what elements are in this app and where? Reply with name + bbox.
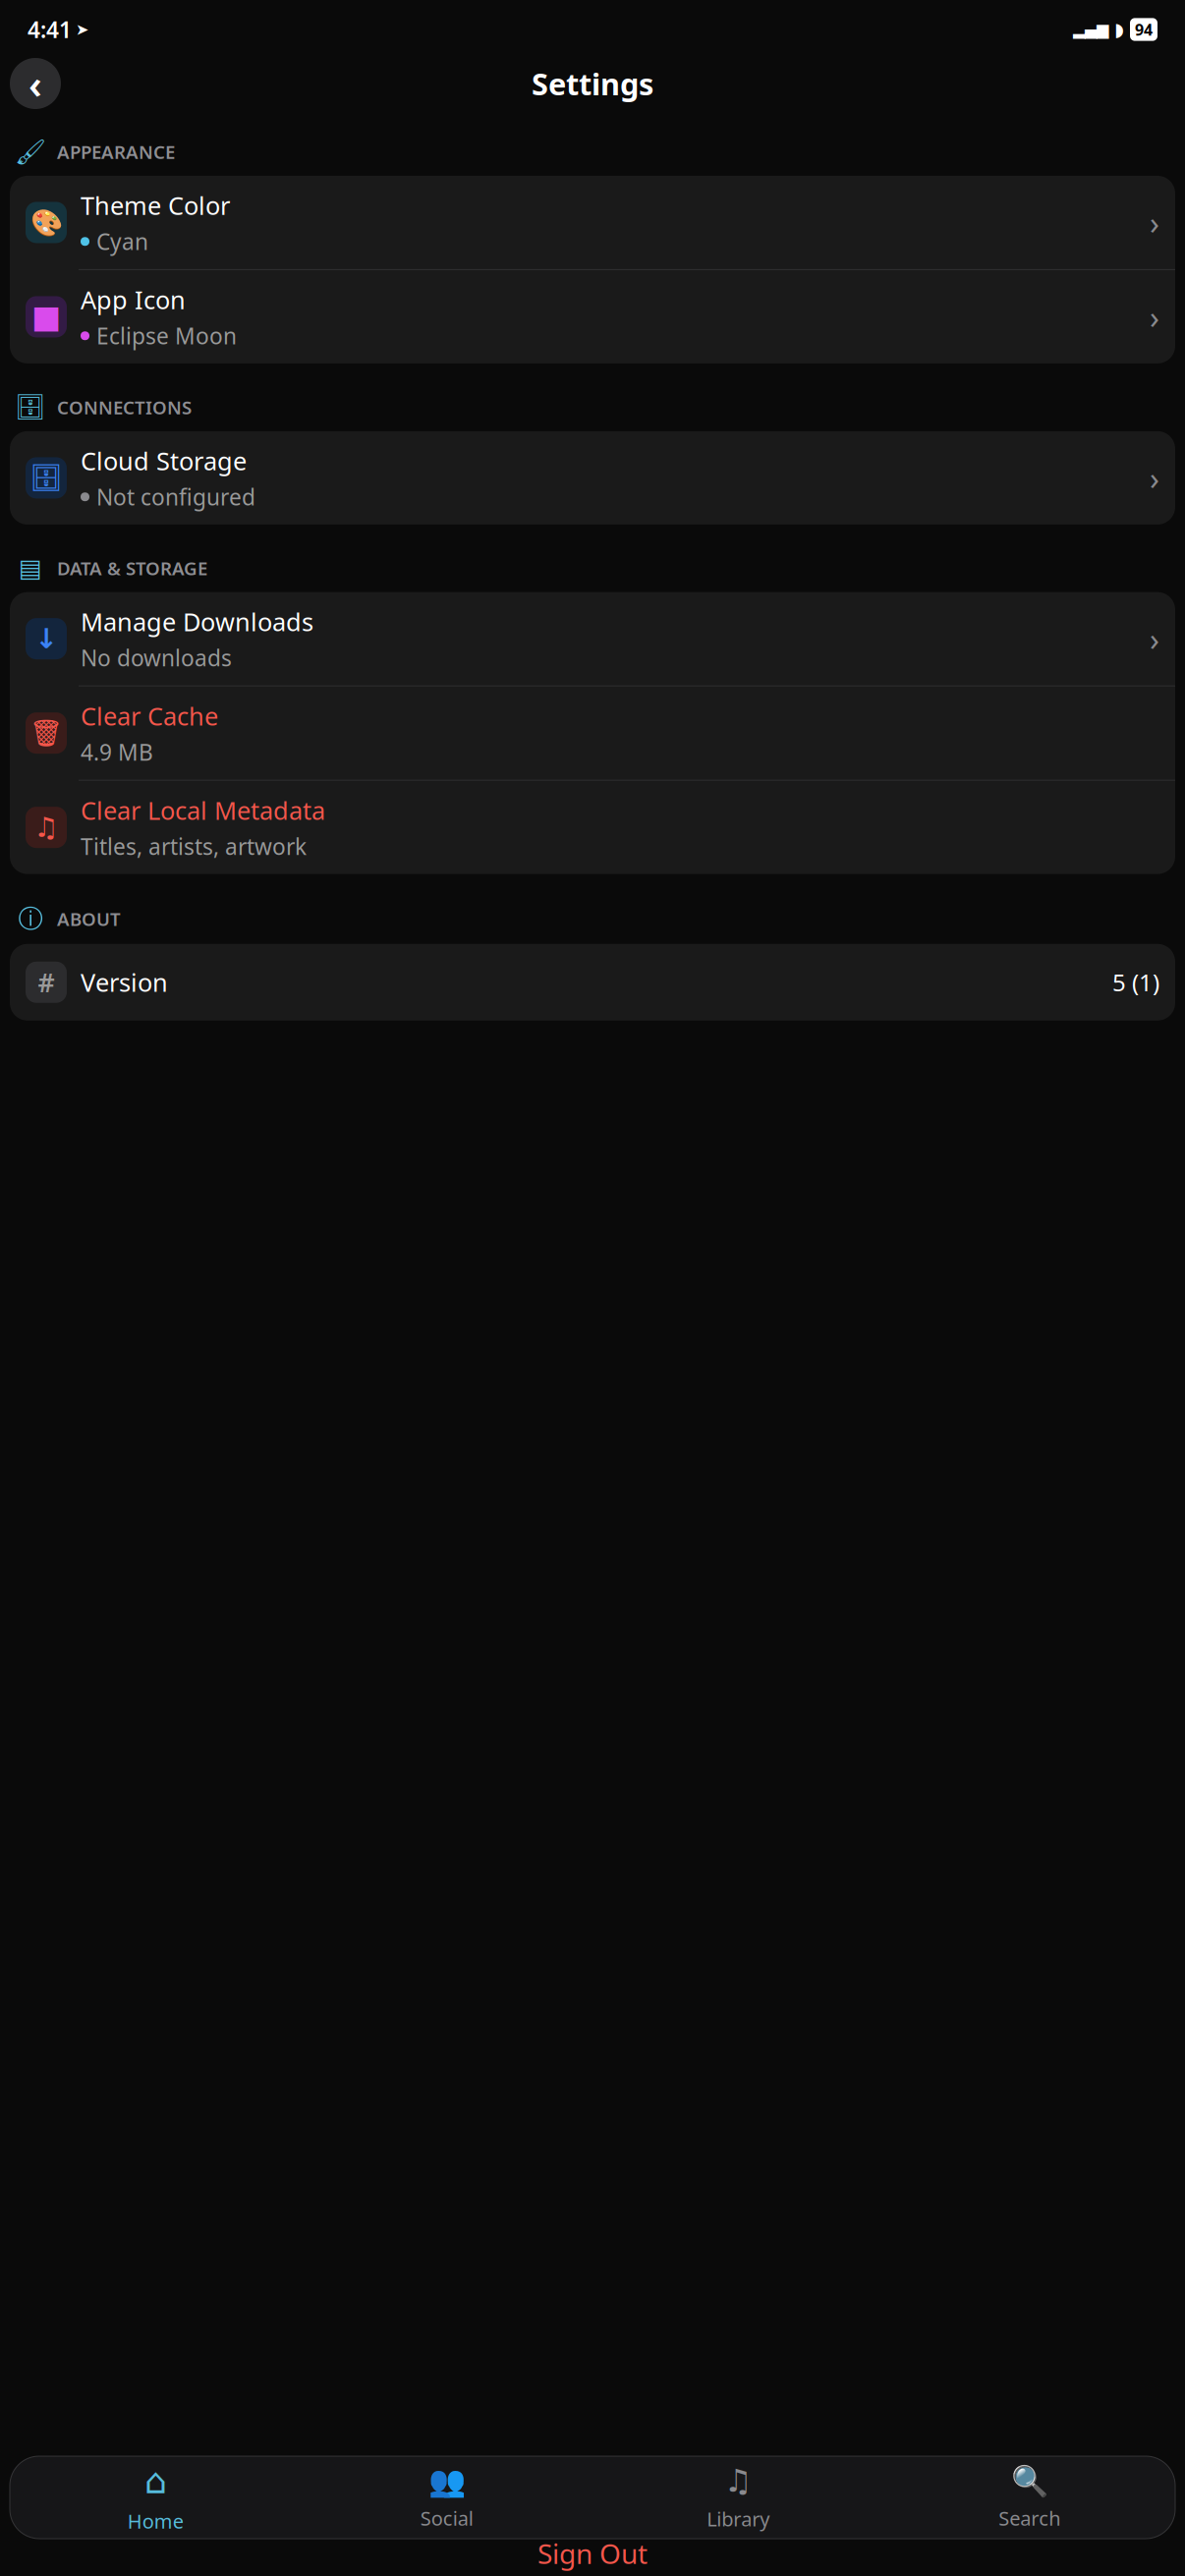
button[interactable]: ↓ <box>10 592 1175 685</box>
staticText: › <box>1150 618 1159 660</box>
staticText: ■ <box>31 299 61 335</box>
staticText: Cloud Storage <box>81 444 247 477</box>
staticText: 🗄 <box>29 463 63 493</box>
button[interactable]: 👥 <box>301 2456 592 2539</box>
staticText: ◗ <box>1114 19 1124 40</box>
staticText: Not configured <box>96 482 255 512</box>
staticText: 🗑 <box>29 718 63 748</box>
staticText: Manage Downloads <box>81 605 313 638</box>
staticText: No downloads <box>81 643 232 672</box>
button[interactable]: Back <box>10 58 61 109</box>
button[interactable]: ■ <box>10 270 1175 363</box>
staticText: # <box>38 965 55 1000</box>
staticText: ♫ <box>724 2463 752 2499</box>
staticText: ▤ <box>19 554 42 582</box>
button[interactable]: 🗑 <box>10 686 1175 780</box>
staticText: Theme Color <box>81 189 230 222</box>
staticText: Settings <box>532 63 653 103</box>
staticText: › <box>1150 296 1159 338</box>
staticText: ↓ <box>35 623 57 654</box>
button[interactable]: ⌂ <box>10 2456 301 2539</box>
staticText: Clear Cache <box>81 699 218 732</box>
staticText: App Icon <box>81 283 186 316</box>
staticText: 94 <box>1135 19 1153 40</box>
staticText: DATA & STORAGE <box>57 556 207 580</box>
staticText: Home <box>128 2508 184 2534</box>
staticText: ⌂ <box>144 2461 167 2501</box>
button[interactable]: 🗄 <box>10 431 1175 525</box>
staticText: 5 (1) <box>1112 967 1159 998</box>
button[interactable]: 🔍 <box>884 2456 1175 2539</box>
button[interactable]: ♫ <box>10 781 1175 874</box>
staticText: 🖌 <box>15 138 46 166</box>
staticText: Library <box>707 2506 770 2532</box>
staticText: Search <box>999 2505 1060 2531</box>
staticText: Eclipse Moon <box>96 321 237 351</box>
staticText: CONNECTIONS <box>57 395 192 419</box>
staticText: ➤ <box>76 21 88 38</box>
staticText: › <box>1150 202 1159 243</box>
staticText: ▂▄▆ <box>1073 21 1108 38</box>
button[interactable]: ♫ <box>592 2456 884 2539</box>
staticText: APPEARANCE <box>57 140 175 164</box>
button[interactable]: Sign Out <box>0 2533 1185 2574</box>
staticText: Cyan <box>96 227 148 256</box>
staticText: Clear Local Metadata <box>81 794 325 827</box>
staticText: › <box>1150 457 1159 499</box>
staticText: Social <box>420 2505 473 2531</box>
staticText: ‹ <box>28 57 42 110</box>
staticText: 🎨 <box>30 207 62 237</box>
staticText: 👥 <box>428 2464 466 2498</box>
staticText: 🔍 <box>1011 2464 1048 2498</box>
staticText: ♫ <box>34 812 58 843</box>
staticText: 4.9 MB <box>81 737 153 767</box>
staticText: Sign Out <box>537 2535 648 2572</box>
staticText: ABOUT <box>57 907 121 931</box>
staticText: ⓘ <box>18 903 43 934</box>
button[interactable]: 🎨 <box>10 176 1175 269</box>
staticText: Titles, artists, artwork <box>81 832 307 861</box>
staticText: Version <box>81 966 168 999</box>
staticText: 🗄 <box>15 393 46 421</box>
staticText: 4:41 <box>28 15 72 44</box>
